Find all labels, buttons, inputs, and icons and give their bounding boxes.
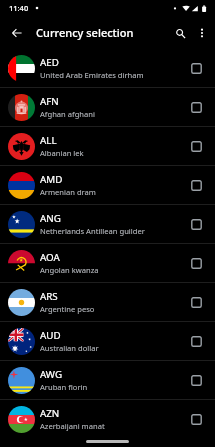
- button[interactable]: Select AUD: [183, 328, 209, 354]
- button[interactable]: AOA: [0, 244, 215, 282]
- button[interactable]: More options: [191, 22, 213, 44]
- button[interactable]: Select ALL: [183, 133, 209, 159]
- button[interactable]: Select ARS: [183, 289, 209, 315]
- staticText: Argentine peso: [40, 304, 95, 314]
- staticText: AOA: [40, 251, 60, 264]
- button[interactable]: AZN: [0, 400, 215, 438]
- button[interactable]: Select AOA: [183, 250, 209, 276]
- staticText: Azerbaijani manat: [40, 421, 105, 431]
- button[interactable]: Back: [6, 22, 28, 44]
- button[interactable]: Search: [169, 22, 191, 44]
- button[interactable]: AMD: [0, 166, 215, 204]
- button[interactable]: ALL: [0, 127, 215, 165]
- staticText: Armenian dram: [40, 187, 96, 197]
- staticText: Currency selection: [36, 25, 134, 40]
- staticText: Netherlands Antillean guilder: [40, 226, 145, 236]
- staticText: United Arab Emirates dirham: [40, 70, 144, 80]
- staticText: 11:40: [9, 3, 29, 13]
- staticText: AFN: [40, 95, 59, 108]
- staticText: Aruban florin: [40, 382, 88, 392]
- staticText: Albanian lek: [40, 148, 84, 158]
- button[interactable]: Select AWG: [183, 367, 209, 393]
- staticText: Australian dollar: [40, 343, 99, 353]
- button[interactable]: AED: [0, 49, 215, 87]
- button[interactable]: Select AZN: [183, 406, 209, 432]
- button[interactable]: Select AFN: [183, 94, 209, 120]
- staticText: ARS: [40, 290, 58, 303]
- staticText: Angolan kwanza: [40, 265, 99, 275]
- button[interactable]: ANG: [0, 205, 215, 243]
- button[interactable]: AFN: [0, 88, 215, 126]
- staticText: ANG: [40, 212, 61, 225]
- staticText: AED: [40, 56, 59, 69]
- staticText: ALL: [40, 134, 57, 147]
- staticText: AWG: [40, 368, 63, 381]
- staticText: AMD: [40, 173, 63, 186]
- button[interactable]: Select AED: [183, 55, 209, 81]
- staticText: AUD: [40, 329, 61, 342]
- button[interactable]: Select ANG: [183, 211, 209, 237]
- button[interactable]: Select AMD: [183, 172, 209, 198]
- staticText: Afghan afghani: [40, 109, 95, 119]
- button[interactable]: AWG: [0, 361, 215, 399]
- staticText: AZN: [40, 407, 60, 420]
- button[interactable]: AUD: [0, 322, 215, 360]
- button[interactable]: ARS: [0, 283, 215, 321]
